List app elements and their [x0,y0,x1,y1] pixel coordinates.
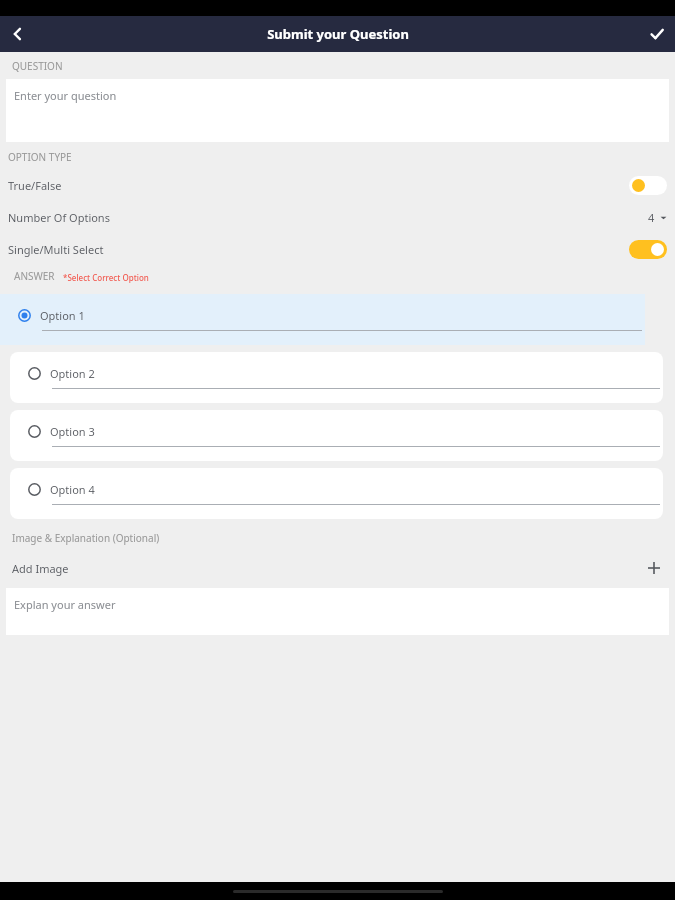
button[interactable]: Option 1 [0,294,645,345]
button[interactable]: Toggle on [629,240,667,259]
button[interactable]: Enter your question [6,79,669,142]
staticText: OPTION TYPE [8,150,72,164]
staticText: ANSWER [14,269,55,283]
button[interactable]: Option 4 [10,468,663,519]
staticText: Image & Explanation (Optional) [12,531,160,545]
staticText: Submit your Question [267,25,409,43]
staticText: Option 1 [40,308,85,323]
staticText: Option 3 [50,424,95,439]
button[interactable]: Back [0,16,36,52]
button[interactable]: Add Image [0,557,675,579]
button[interactable]: Option 2 [10,352,663,403]
staticText: 4 [648,210,655,225]
button[interactable]: True/False [0,173,675,197]
staticText: *Select Correct Option [63,272,149,283]
button[interactable]: Single/Multi Select [0,237,675,261]
staticText: Explan your answer [14,597,116,612]
staticText: Add Image [12,561,69,576]
staticText: Option 4 [50,482,95,497]
staticText: Option 2 [50,366,95,381]
button[interactable]: Submit [639,16,675,52]
button[interactable]: Option 3 [10,410,663,461]
staticText: QUESTION [12,59,63,73]
button[interactable]: Number Of Options [0,205,675,229]
other: Add Image [645,559,663,577]
staticText: True/False [8,178,62,193]
button[interactable]: Toggle off [629,176,667,195]
staticText: Enter your question [14,88,117,103]
staticText: Number Of Options [8,210,110,225]
staticText: Single/Multi Select [8,242,104,257]
button[interactable]: Explan your answer [6,588,669,635]
